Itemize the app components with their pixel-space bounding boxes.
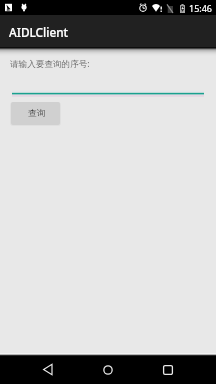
staticText: 查询 [28, 108, 46, 119]
staticText: 请输入要查询的序号: [10, 58, 90, 70]
button[interactable]: Home [98, 355, 118, 384]
button[interactable]: Recent apps [158, 355, 178, 384]
button[interactable]: Back [38, 355, 58, 384]
staticText: 15:46 [189, 2, 213, 14]
button[interactable]: 查询 [11, 102, 60, 125]
staticText: AIDLClient [9, 24, 69, 40]
